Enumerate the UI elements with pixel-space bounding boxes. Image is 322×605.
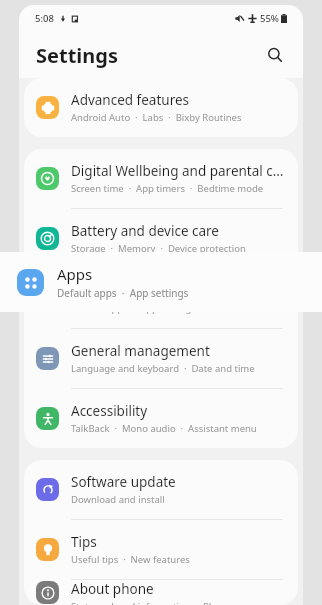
staticText: Default apps · App settings [71,302,196,315]
staticText: Status · Legal information · Phone name [71,600,260,605]
staticText: Apps [57,264,93,284]
button[interactable]: Tips [24,520,298,579]
staticText: Useful tips · New features [71,553,190,566]
button[interactable]: Search [259,39,291,71]
staticText: Download and install [71,493,165,506]
staticText: Accessibility [71,402,148,420]
staticText: Storage · Memory · Device protection [71,242,246,255]
staticText: 55% [260,12,279,25]
staticText: Screen time · App timers · Bedtime mode [71,182,264,195]
staticText: Tips [71,533,97,551]
button[interactable]: Apps [0,252,322,312]
button[interactable]: Advanced features [24,78,298,137]
button[interactable]: About phone [24,580,298,605]
staticText: Android Auto · Labs · Bixby Routines [71,111,242,124]
staticText: About phone [71,580,154,598]
staticText: General management [71,342,210,360]
staticText: Software update [71,473,176,491]
staticText: Language and keyboard · Date and time [71,362,255,375]
button[interactable]: Apps [24,269,298,328]
staticText: 5:08 [35,12,54,25]
staticText: Advanced features [71,91,190,109]
staticText: Default apps · App settings [57,286,189,300]
button[interactable]: Battery and device care [24,209,298,268]
staticText: Battery and device care [71,222,219,240]
button[interactable]: Accessibility [24,389,298,448]
staticText: Settings [36,42,118,69]
staticText: TalkBack · Mono audio · Assistant menu [71,422,257,435]
button[interactable]: Digital Wellbeing and parental controls [24,149,298,208]
button[interactable]: General management [24,329,298,388]
staticText: Digital Wellbeing and parental controls [71,162,286,180]
button[interactable]: Software update [24,460,298,519]
staticText: Apps [71,282,103,300]
